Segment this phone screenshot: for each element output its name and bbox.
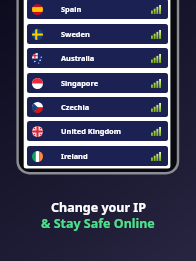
button[interactable]: Singapore — [27, 73, 168, 93]
staticText: & Stay Safe Online — [41, 215, 155, 232]
button[interactable]: Australia — [27, 48, 168, 68]
staticText: Czechia — [61, 102, 90, 112]
button[interactable]: United Kingdom — [27, 121, 168, 141]
staticText: Sweden — [61, 29, 90, 39]
staticText: Singapore — [61, 78, 99, 88]
staticText: Australia — [61, 53, 95, 63]
button[interactable]: Spain — [27, 0, 168, 19]
staticText: Ireland — [61, 151, 88, 161]
button[interactable]: Sweden — [27, 24, 168, 44]
staticText: United Kingdom — [61, 126, 121, 136]
staticText: Spain — [61, 4, 82, 14]
button[interactable]: Ireland — [27, 146, 168, 166]
staticText: Change your IP — [51, 199, 146, 216]
button[interactable]: Czechia — [27, 97, 168, 117]
